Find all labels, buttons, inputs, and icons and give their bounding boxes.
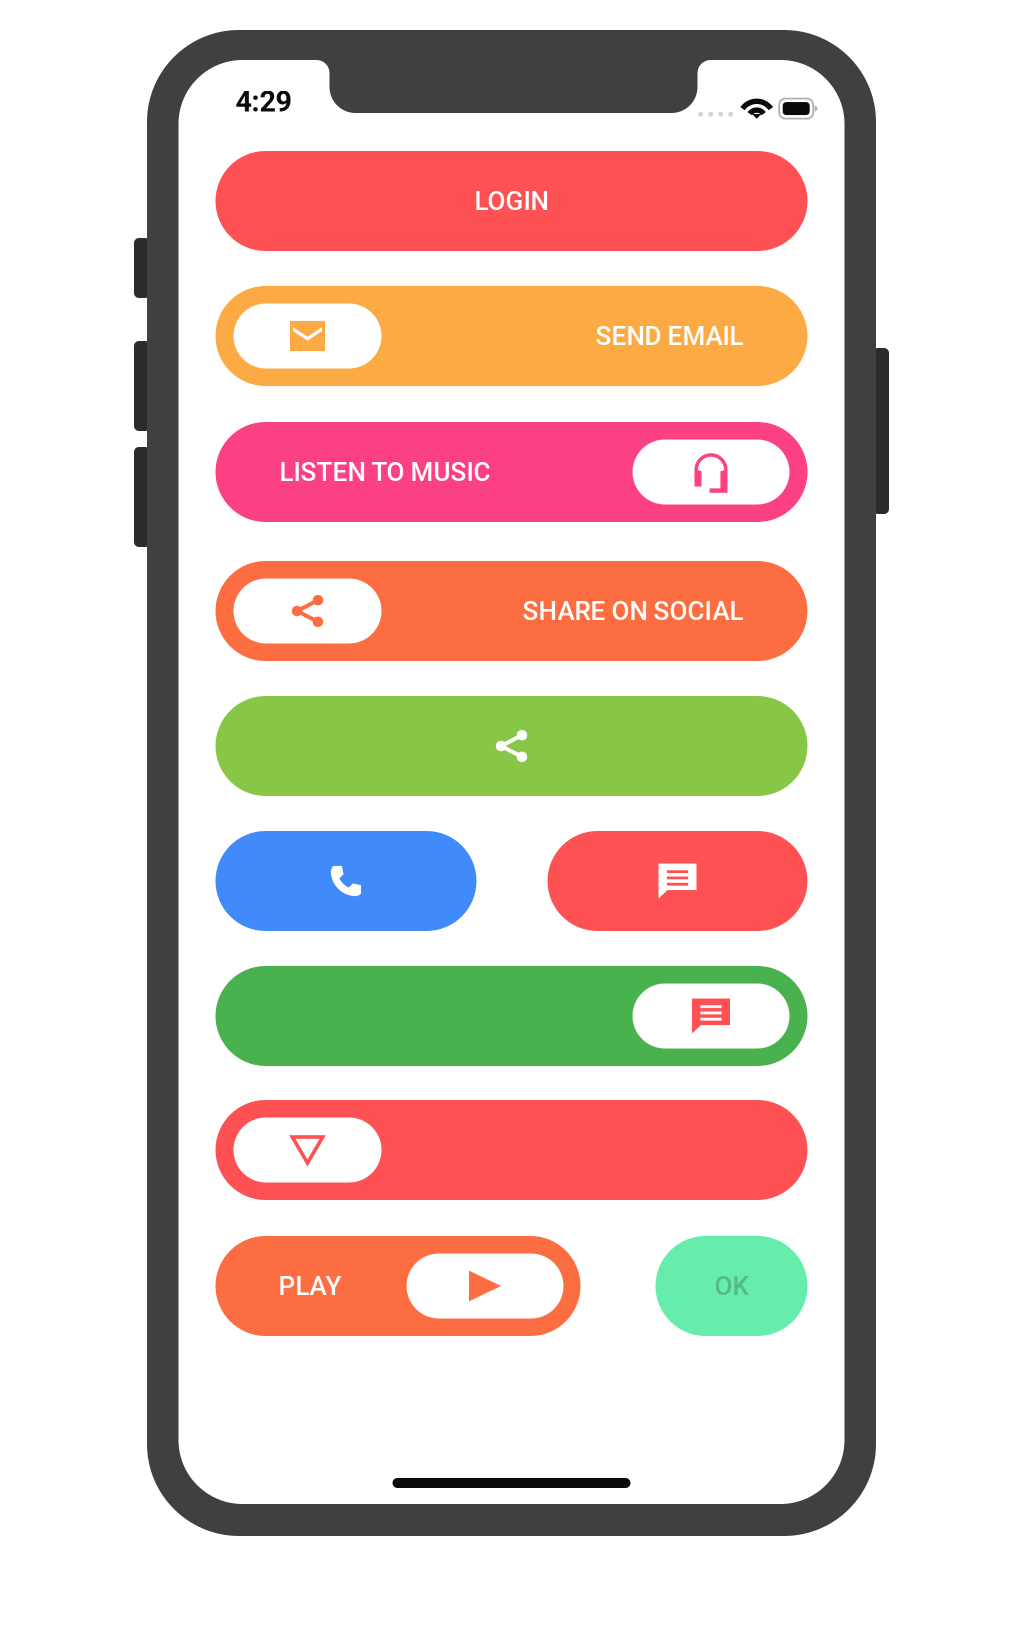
staticText: 4:29: [235, 85, 291, 119]
button[interactable]: PLAY: [215, 1236, 580, 1336]
staticText: PLAY: [278, 1271, 341, 1301]
button[interactable]: SHARE ON SOCIAL: [215, 561, 807, 661]
staticText: SEND EMAIL: [595, 321, 743, 351]
button[interactable]: LOGIN: [215, 151, 807, 251]
button[interactable]: Messages: [215, 966, 807, 1066]
button[interactable]: Message: [547, 831, 807, 931]
button[interactable]: LISTEN TO MUSIC: [215, 422, 807, 522]
staticText: SHARE ON SOCIAL: [522, 596, 743, 626]
button[interactable]: OK: [655, 1236, 807, 1336]
button[interactable]: Download: [215, 1100, 807, 1200]
staticText: LOGIN: [474, 186, 548, 216]
button[interactable]: Share: [215, 696, 807, 796]
staticText: OK: [714, 1271, 748, 1301]
button[interactable]: Call: [215, 831, 476, 931]
button[interactable]: SEND EMAIL: [215, 286, 807, 386]
staticText: LISTEN TO MUSIC: [279, 457, 490, 487]
